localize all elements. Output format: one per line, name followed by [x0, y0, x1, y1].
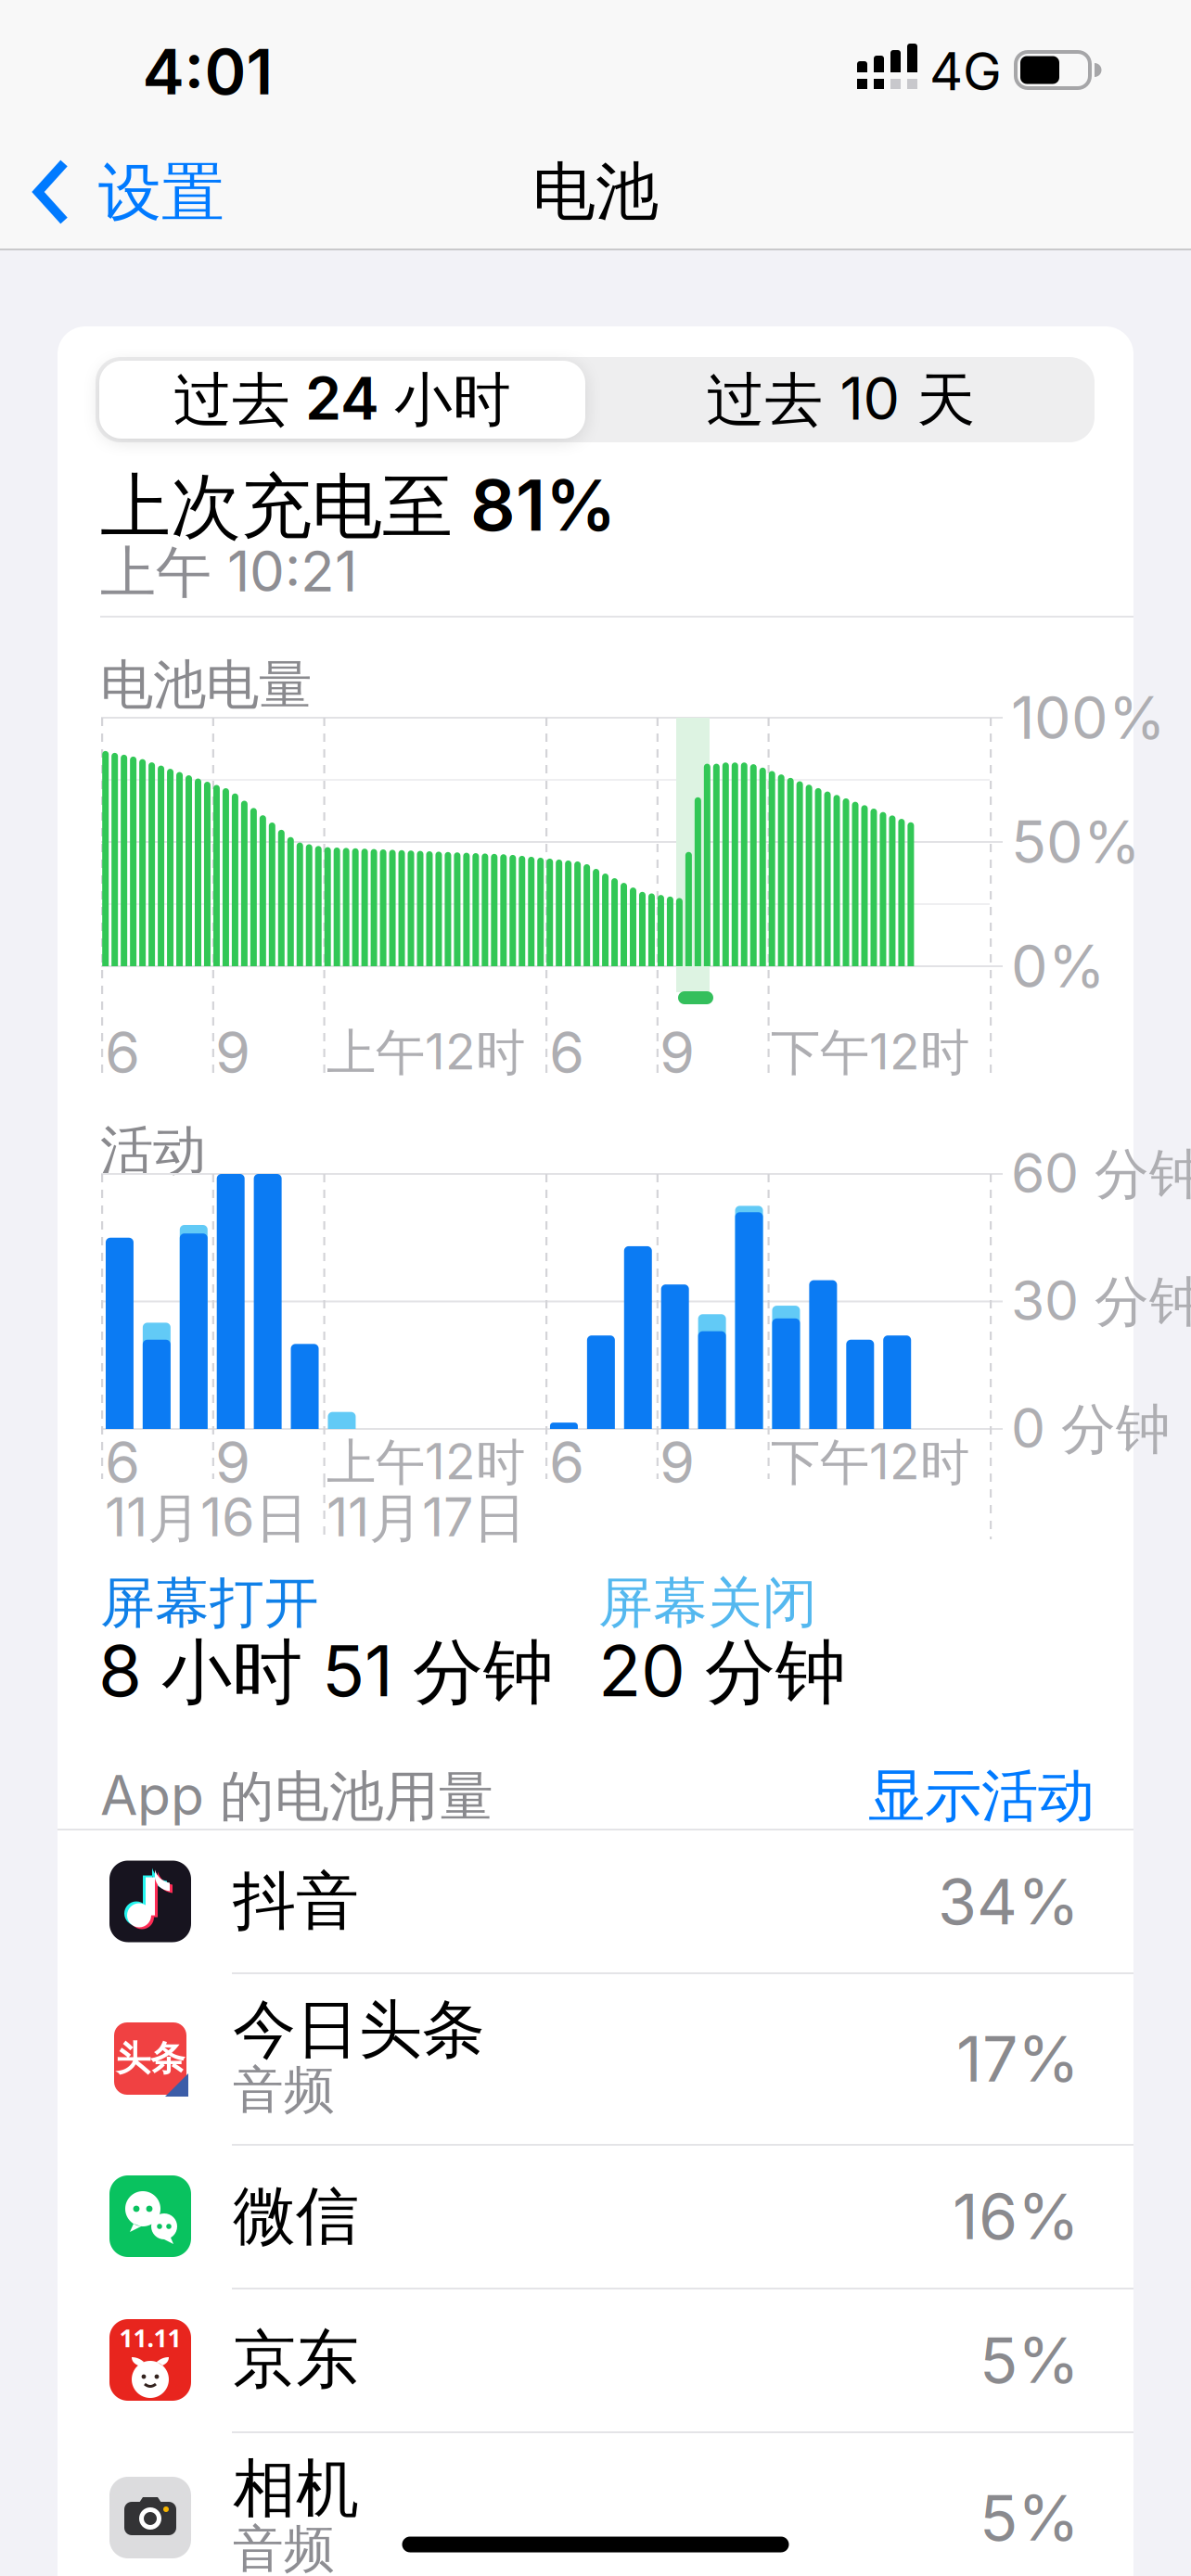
staticText: 日 — [255, 1486, 308, 1551]
staticText: 10:21 — [211, 537, 357, 605]
staticText: 音频 — [233, 2518, 335, 2576]
staticText: 下午 — [771, 1432, 869, 1493]
staticText: 小时 — [394, 365, 511, 436]
staticText: 50% — [1011, 807, 1141, 877]
staticText: 的电池用量 — [220, 1763, 493, 1830]
staticText: 日 — [473, 1486, 526, 1551]
staticText: 分钟 — [1095, 1141, 1191, 1208]
staticText: 12 — [869, 1431, 920, 1491]
staticText: 17% — [956, 2020, 1080, 2097]
staticText: 过去 — [706, 365, 823, 436]
staticText: 4G — [929, 40, 1002, 103]
staticText: 9 — [660, 1018, 695, 1087]
staticText: 月 — [147, 1486, 200, 1551]
staticText: 12 — [425, 1431, 476, 1491]
staticText: 头条 — [116, 2037, 185, 2080]
staticText: 上次充电至 — [100, 464, 453, 550]
staticText: 音频 — [233, 2059, 335, 2121]
staticText: 11 — [105, 1485, 147, 1549]
button[interactable]: 过去 — [590, 361, 1091, 439]
staticText: 9 — [660, 1428, 695, 1497]
button[interactable]: 11.11 — [58, 2288, 1133, 2432]
staticText: 屏幕打开 — [100, 1570, 319, 1637]
staticText: 100% — [1011, 683, 1166, 753]
staticText: 6 — [549, 1428, 584, 1497]
staticText: 17 — [422, 1485, 473, 1549]
staticText: 12 — [425, 1022, 476, 1081]
button[interactable]: 过去 — [99, 361, 585, 439]
staticText: 活动 — [100, 1118, 206, 1183]
staticText: 上午 — [327, 1432, 425, 1493]
staticText: 20 — [598, 1628, 705, 1713]
staticText: 11.11 — [119, 2321, 181, 2354]
staticText: 6 — [549, 1018, 584, 1087]
staticText: 小时 — [161, 1629, 302, 1716]
button[interactable]: 相机 — [58, 2432, 1133, 2576]
staticText: 分钟 — [705, 1629, 846, 1716]
staticText: 今日头条 — [233, 1991, 485, 2068]
staticText: 34% — [938, 1863, 1080, 1940]
staticText: 4:01 — [142, 33, 273, 110]
button[interactable]: 微信 — [58, 2144, 1133, 2288]
staticText: 60 — [1011, 1140, 1095, 1206]
staticText: 81% — [453, 462, 616, 548]
staticText: 相机 — [233, 2450, 359, 2528]
staticText: 0 — [1011, 1395, 1061, 1461]
staticText: 电池 — [532, 153, 659, 231]
staticText: 上午 — [100, 539, 211, 607]
staticText: 时 — [920, 1023, 969, 1083]
staticText: 上午 — [327, 1023, 425, 1083]
staticText: 9 — [215, 1018, 250, 1087]
staticText: 屏幕关闭 — [598, 1570, 817, 1637]
staticText: 天 — [917, 365, 975, 436]
staticText: 0% — [1011, 931, 1106, 1001]
staticText: 51 — [302, 1628, 413, 1713]
staticText: 微信 — [233, 2177, 359, 2255]
staticText: 16 — [200, 1485, 255, 1549]
staticText: 京东 — [233, 2321, 359, 2399]
staticText: 10 — [823, 363, 917, 434]
staticText: 时 — [476, 1023, 525, 1083]
staticText: 12 — [869, 1022, 920, 1081]
staticText: 过去 — [173, 365, 290, 436]
staticText: 9 — [215, 1428, 250, 1497]
staticText: 显示活动 — [868, 1761, 1095, 1831]
staticText: 月 — [369, 1486, 422, 1551]
staticText: 分钟 — [413, 1629, 554, 1716]
staticText: 分钟 — [1061, 1396, 1171, 1463]
button[interactable]: 返回设置 — [33, 151, 247, 235]
staticText: App — [100, 1762, 220, 1828]
button[interactable]: 显示活动 — [798, 1759, 1095, 1833]
staticText: 11 — [327, 1485, 369, 1549]
staticText: 下午 — [771, 1023, 869, 1083]
staticText: 24 — [290, 363, 394, 434]
button[interactable]: 头条 — [58, 1973, 1133, 2144]
staticText: 电池电量 — [100, 653, 312, 718]
staticText: 6 — [105, 1428, 140, 1497]
staticText: 设置 — [98, 154, 224, 232]
staticText: 30 — [1011, 1267, 1095, 1333]
staticText: 6 — [105, 1018, 140, 1087]
staticText: 抖音 — [233, 1863, 359, 1940]
staticText: 分钟 — [1095, 1269, 1191, 1335]
staticText: 时 — [920, 1432, 969, 1493]
staticText: 时 — [476, 1432, 525, 1493]
staticText: 5% — [980, 2322, 1080, 2398]
staticText: 16% — [953, 2178, 1080, 2254]
staticText: 5% — [980, 2479, 1080, 2556]
staticText: 8 — [98, 1628, 161, 1713]
button[interactable]: 抖音 — [58, 1830, 1133, 1973]
